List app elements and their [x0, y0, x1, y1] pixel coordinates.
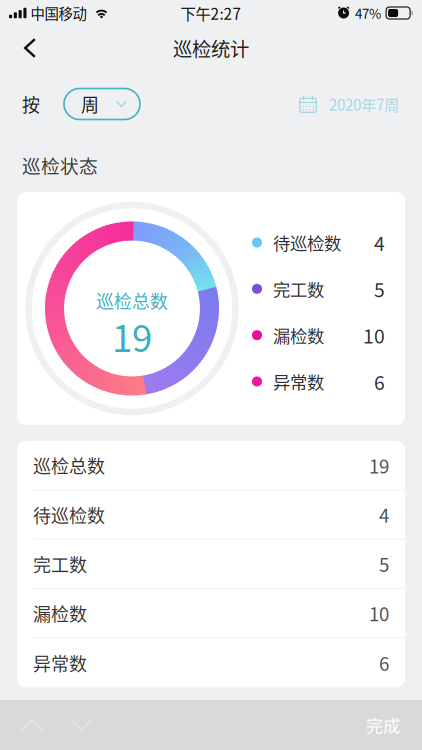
- button[interactable]: Back: [0, 28, 50, 68]
- staticText: 6: [374, 367, 385, 395]
- staticText: 中国移动: [30, 3, 86, 23]
- button[interactable]: 完工数: [17, 540, 405, 589]
- staticText: 漏检数: [33, 600, 87, 626]
- staticText: 待巡检数: [273, 230, 341, 255]
- button[interactable]: 异常数: [17, 638, 405, 687]
- staticText: 6: [379, 649, 389, 676]
- button[interactable]: 巡检总数: [17, 441, 405, 490]
- staticText: 下午2:27: [180, 2, 241, 24]
- staticText: 19: [369, 452, 389, 479]
- staticText: 4: [374, 229, 385, 257]
- staticText: 巡检状态: [22, 151, 98, 178]
- staticText: 10: [369, 600, 389, 627]
- staticText: 漏检数: [273, 323, 324, 348]
- button[interactable]: 漏检数: [17, 589, 405, 638]
- button[interactable]: 周: [64, 88, 140, 119]
- staticText: 巡检总数: [96, 287, 168, 313]
- staticText: 异常数: [33, 650, 87, 676]
- staticText: 47%: [355, 3, 381, 23]
- staticText: 5: [374, 275, 385, 303]
- button[interactable]: 待巡检数: [17, 490, 405, 540]
- staticText: 巡检统计: [173, 34, 249, 62]
- staticText: 周: [81, 91, 99, 117]
- staticText: 4: [379, 501, 389, 528]
- staticText: 待巡检数: [33, 501, 105, 528]
- staticText: 异常数: [273, 369, 324, 394]
- staticText: 完工数: [33, 551, 87, 577]
- staticText: 10: [363, 321, 385, 349]
- staticText: 2020年7周: [329, 93, 399, 115]
- staticText: 19: [112, 309, 152, 362]
- staticText: 完成: [366, 712, 400, 738]
- button[interactable]: 2020年7周: [299, 85, 422, 123]
- staticText: 按: [22, 91, 40, 117]
- staticText: 巡检总数: [33, 452, 105, 478]
- button[interactable]: 完成: [350, 699, 422, 750]
- staticText: 5: [379, 550, 389, 577]
- staticText: 完工数: [273, 276, 324, 301]
